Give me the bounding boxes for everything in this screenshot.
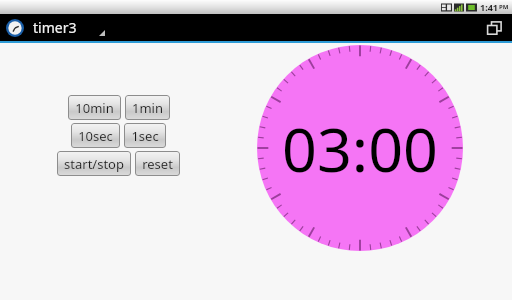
staticText: 1min xyxy=(132,99,163,117)
button[interactable]: 1sec xyxy=(124,123,166,148)
button[interactable]: 1min xyxy=(125,95,170,120)
button[interactable]: start/stop xyxy=(57,151,131,176)
staticText: 10min xyxy=(75,99,114,117)
button[interactable]: Save xyxy=(482,16,506,40)
staticText: 03:00 xyxy=(282,107,438,190)
button[interactable]: 10sec xyxy=(71,123,120,148)
staticText: 1:41 xyxy=(480,1,498,13)
staticText: PM xyxy=(499,3,509,11)
staticText: 1sec xyxy=(131,127,159,145)
button[interactable]: reset xyxy=(135,151,180,176)
staticText: timer3 xyxy=(33,18,77,37)
staticText: reset xyxy=(142,155,173,173)
button[interactable]: Timer dial 03:00 xyxy=(257,45,463,251)
button[interactable]: 10min xyxy=(68,95,121,120)
staticText: 10sec xyxy=(78,127,113,145)
staticText: start/stop xyxy=(64,155,124,173)
